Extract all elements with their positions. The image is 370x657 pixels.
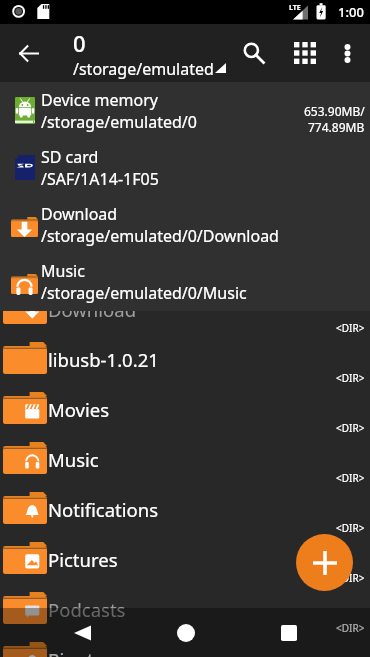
button[interactable]: Back bbox=[9, 33, 49, 73]
button[interactable]: libusb-1.0.21 bbox=[0, 334, 370, 384]
staticText: Ringtones bbox=[48, 647, 365, 657]
staticText: 0 bbox=[73, 28, 86, 58]
staticText: Download bbox=[41, 203, 118, 225]
staticText: LTE bbox=[289, 3, 301, 13]
button[interactable]: More options bbox=[325, 31, 369, 75]
staticText: <DIR> bbox=[336, 321, 365, 335]
staticText: Music bbox=[41, 260, 85, 282]
staticText: /storage/emulated/0 bbox=[41, 111, 197, 133]
button[interactable]: Recents bbox=[264, 608, 313, 657]
button[interactable]: Grid view bbox=[283, 31, 327, 75]
button[interactable]: Back bbox=[58, 608, 107, 657]
staticText: Podcasts bbox=[48, 597, 365, 622]
staticText: <DIR> bbox=[336, 521, 365, 535]
staticText: /SAF/1A14-1F05 bbox=[41, 168, 159, 190]
staticText: Device memory bbox=[41, 89, 158, 111]
button[interactable]: Download bbox=[0, 196, 370, 253]
staticText: /storage/emulated/0/Download bbox=[41, 225, 279, 247]
staticText: <DIR> bbox=[336, 621, 365, 635]
staticText: Notifications bbox=[48, 497, 365, 522]
staticText: <DIR> bbox=[336, 571, 365, 585]
staticText: SD card bbox=[41, 146, 99, 168]
staticText: /storage/emulated/0/Music bbox=[41, 282, 247, 304]
button[interactable]: Device memory bbox=[0, 82, 370, 311]
staticText: <DIR> bbox=[336, 471, 365, 485]
staticText: /storage/emulated bbox=[73, 58, 214, 80]
staticText: Movies bbox=[48, 397, 365, 422]
button[interactable]: Podcasts bbox=[0, 584, 370, 634]
button[interactable]: Device memory bbox=[0, 82, 370, 139]
staticText: 653.90MB/ bbox=[304, 103, 365, 119]
button[interactable]: Music bbox=[0, 253, 370, 310]
button[interactable]: Home bbox=[161, 608, 210, 657]
button[interactable]: Pictures bbox=[0, 534, 370, 584]
staticText: Download bbox=[48, 297, 365, 322]
button[interactable]: Search bbox=[232, 31, 276, 75]
staticText: <DIR> bbox=[336, 371, 365, 385]
staticText: <DIR> bbox=[336, 421, 365, 435]
button[interactable]: Ringtones bbox=[0, 634, 370, 657]
button[interactable]: Download bbox=[0, 284, 370, 334]
button[interactable]: Music bbox=[0, 434, 370, 484]
staticText: Music bbox=[48, 447, 365, 472]
button[interactable]: Movies bbox=[0, 384, 370, 434]
button[interactable]: Add bbox=[296, 534, 353, 591]
button[interactable]: SD card bbox=[0, 139, 370, 196]
button[interactable]: Notifications bbox=[0, 484, 370, 534]
staticText: Pictures bbox=[48, 547, 365, 572]
staticText: libusb-1.0.21 bbox=[48, 347, 365, 372]
staticText: 1:00 bbox=[338, 3, 364, 21]
staticText: 774.89MB bbox=[308, 119, 365, 135]
